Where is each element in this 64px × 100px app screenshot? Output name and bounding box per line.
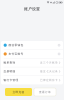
staticText: 支付宝账号 bbox=[8, 52, 23, 56]
staticText: 已绑定两张卡 bbox=[40, 79, 58, 82]
staticText: 账单查询 bbox=[4, 61, 16, 64]
button[interactable]: 查看订单 bbox=[34, 88, 56, 96]
staticText: 立即充值 bbox=[12, 90, 24, 94]
staticText: 近三个月账单 bbox=[40, 61, 58, 64]
button[interactable]: 账单查询 bbox=[1, 58, 63, 67]
button[interactable]: 银行卡管理 bbox=[1, 76, 63, 84]
button[interactable]: 立即充值 bbox=[5, 88, 32, 96]
button[interactable]: 支付宝账号 bbox=[1, 50, 63, 58]
button[interactable]: 微信零钱包 bbox=[1, 41, 63, 49]
staticText: 查看订单 bbox=[39, 90, 51, 94]
staticText: 账户设置 bbox=[24, 6, 40, 11]
staticText: 最近七天记录 bbox=[40, 70, 58, 73]
staticText: 银行卡管理 bbox=[4, 79, 19, 82]
button[interactable]: 交易明细 bbox=[1, 67, 63, 76]
staticText: 微信零钱包 bbox=[8, 44, 23, 47]
staticText: 交易明细 bbox=[4, 70, 16, 73]
